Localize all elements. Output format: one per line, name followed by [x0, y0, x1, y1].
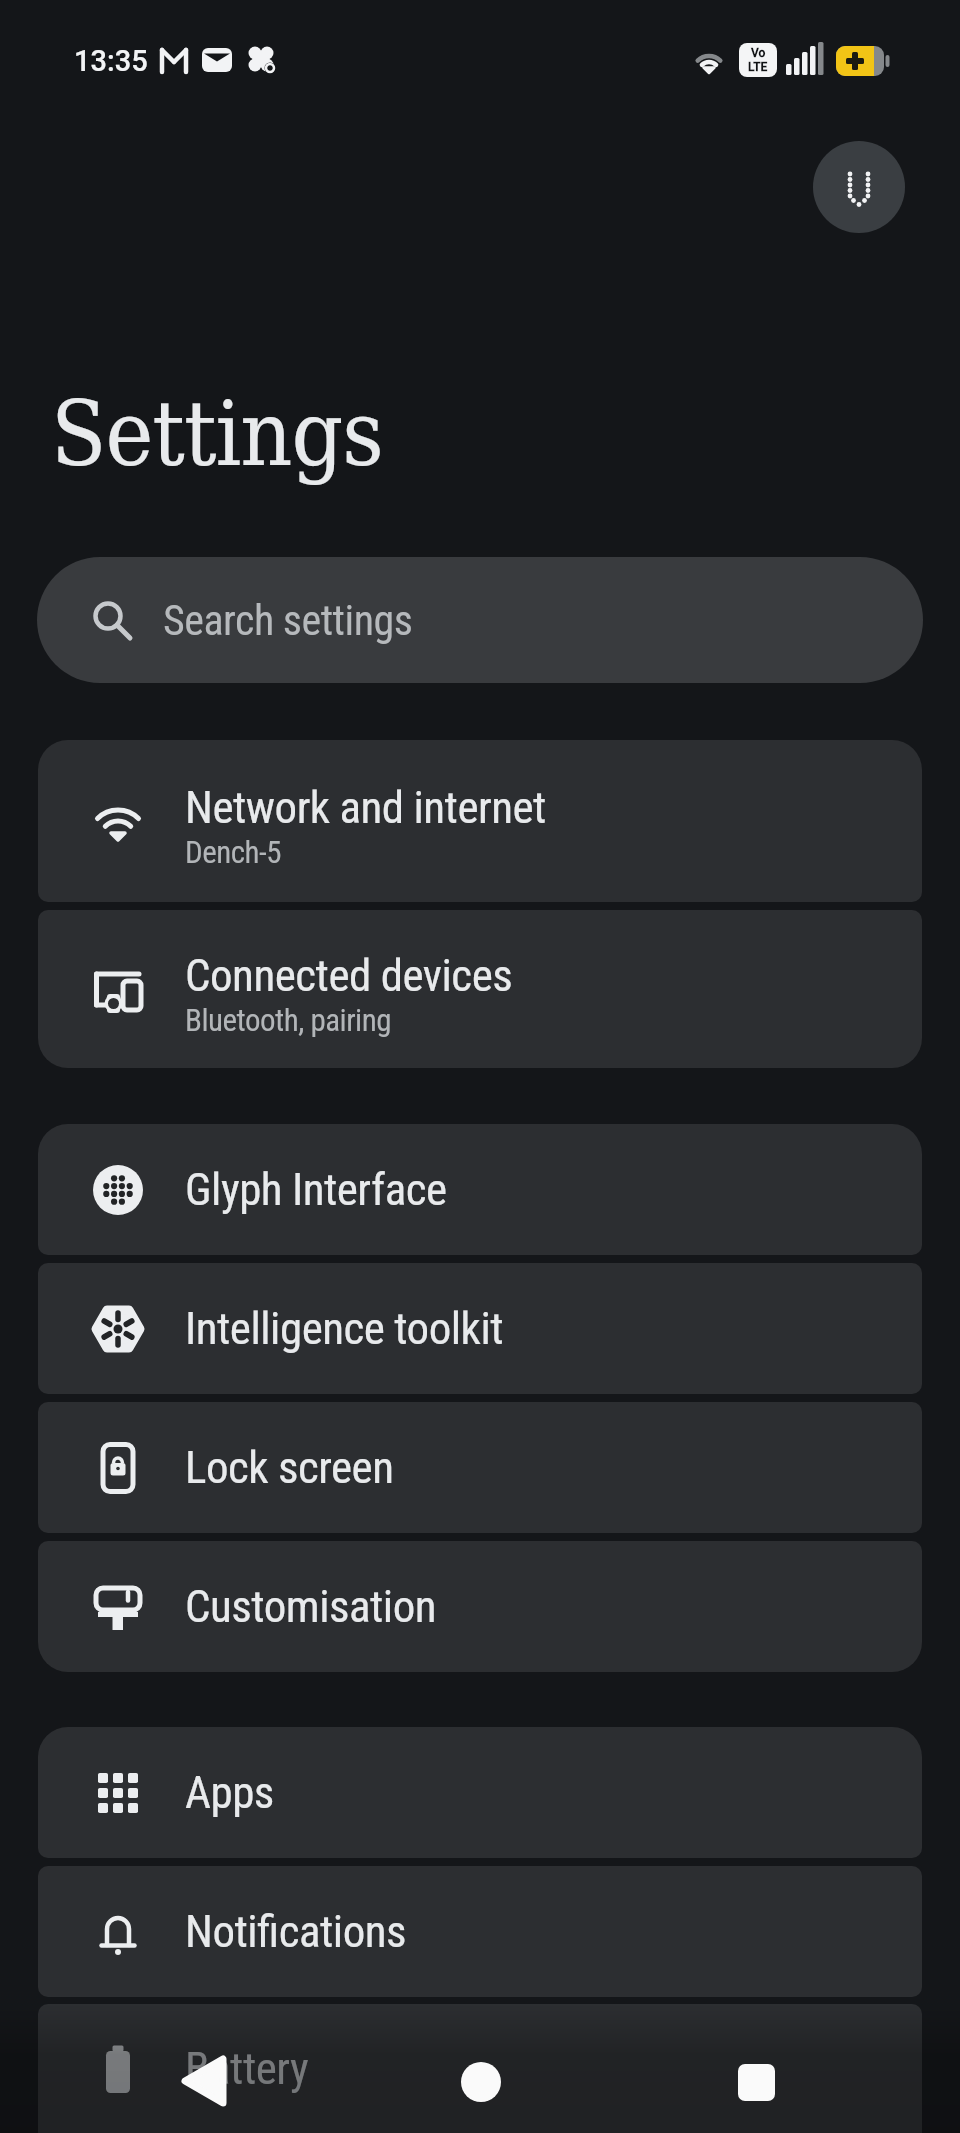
button[interactable] — [813, 141, 905, 233]
staticText: Network and internet — [185, 781, 546, 834]
staticText: Vo — [751, 46, 766, 60]
button[interactable]: Glyph Interface — [38, 1124, 922, 1255]
staticText: Customisation — [185, 1580, 437, 1633]
button[interactable]: Intelligence toolkit — [38, 1263, 922, 1394]
button[interactable] — [169, 2046, 239, 2116]
staticText: Notifications — [185, 1905, 407, 1958]
button[interactable]: Connected devices — [38, 910, 922, 1068]
button[interactable]: Lock screen — [38, 1402, 922, 1533]
button[interactable] — [446, 2047, 516, 2117]
button[interactable]: Notifications — [38, 1866, 922, 1997]
staticText: 13:35 — [74, 44, 148, 78]
button[interactable]: Search settings — [37, 557, 923, 683]
button[interactable]: Customisation — [38, 1541, 922, 1672]
button[interactable]: Battery — [38, 2004, 922, 2133]
staticText: Connected devices — [185, 949, 513, 1002]
staticText: LTE — [748, 60, 768, 74]
staticText: Lock screen — [185, 1441, 394, 1494]
staticText: Intelligence toolkit — [185, 1302, 504, 1355]
staticText: Apps — [185, 1766, 274, 1819]
staticText: Search settings — [163, 596, 413, 645]
button[interactable]: Apps — [38, 1727, 922, 1858]
staticText: Dench-5 — [185, 834, 282, 870]
button[interactable]: Network and internet — [38, 740, 922, 902]
staticText: Battery — [185, 2042, 309, 2095]
staticText: Bluetooth, pairing — [185, 1002, 392, 1038]
staticText: Settings — [51, 381, 383, 486]
button[interactable] — [721, 2047, 791, 2117]
staticText: Glyph Interface — [185, 1163, 447, 1216]
